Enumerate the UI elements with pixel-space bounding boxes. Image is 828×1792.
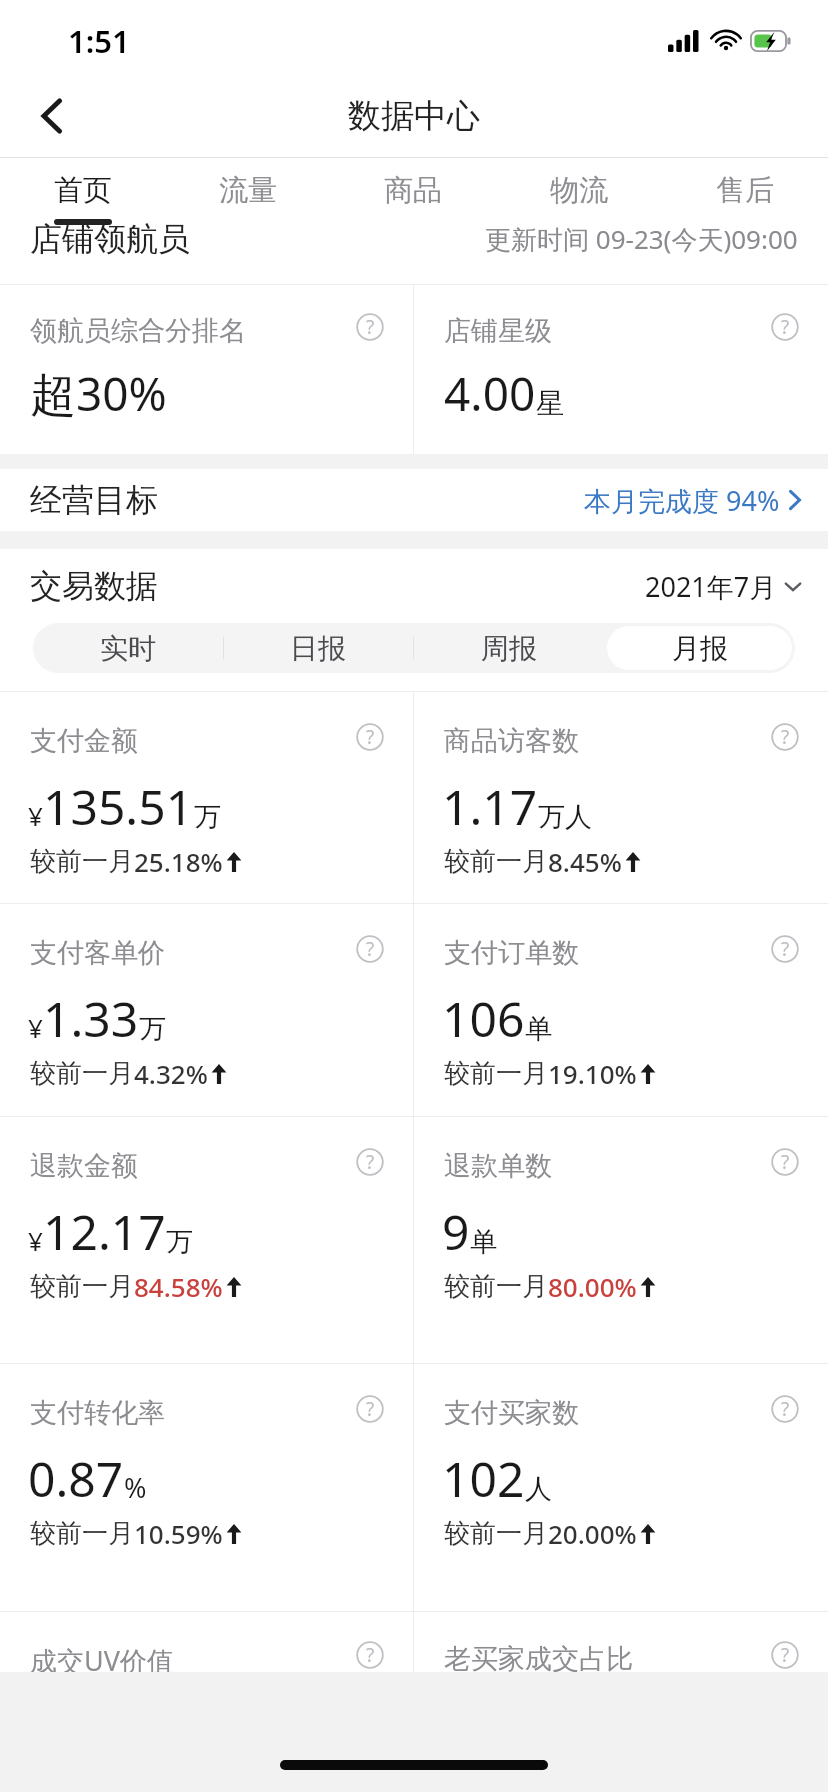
staticText: 135.51	[43, 774, 194, 839]
staticText: 流量	[219, 172, 277, 209]
staticText: 84.58%	[134, 1269, 223, 1304]
staticText: 10.59%	[134, 1516, 223, 1551]
staticText: 领航员综合分排名	[30, 314, 246, 348]
button[interactable]: 支付转化率	[0, 1364, 413, 1611]
staticText: 较前一月	[30, 1517, 134, 1550]
button[interactable]: Help	[355, 934, 385, 964]
staticText: 万	[139, 1012, 166, 1046]
staticText: 支付买家数	[444, 1396, 579, 1430]
staticText: ?	[781, 936, 790, 962]
staticText: ?	[781, 1642, 790, 1668]
staticText: 20.00%	[548, 1516, 637, 1551]
staticText: 0.87	[28, 1446, 124, 1511]
button[interactable]: 月报	[604, 623, 795, 673]
staticText: ?	[366, 1149, 375, 1175]
staticText: 106	[442, 986, 525, 1051]
staticText: 物流	[550, 172, 608, 209]
staticText: 退款金额	[30, 1149, 138, 1183]
button[interactable]: 日报	[223, 623, 413, 673]
button[interactable]: 实时	[33, 623, 223, 673]
button[interactable]: Help	[355, 1147, 385, 1177]
button[interactable]: 支付客单价	[0, 904, 413, 1116]
staticText: 较前一月	[444, 1517, 548, 1550]
staticText: 较前一月	[30, 1057, 134, 1090]
staticText: 支付客单价	[30, 936, 165, 970]
staticText: 商品	[384, 172, 442, 209]
staticText: 交易数据	[30, 566, 158, 606]
button[interactable]: 经营目标	[0, 469, 828, 531]
staticText: 8.45%	[548, 844, 622, 879]
button[interactable]: 退款单数	[414, 1117, 828, 1363]
button[interactable]: Back	[0, 75, 104, 157]
staticText: 1:51	[68, 20, 130, 62]
staticText: 4.00	[444, 362, 536, 425]
staticText: 支付转化率	[30, 1396, 165, 1430]
staticText: 日报	[290, 631, 346, 666]
button[interactable]: 商品	[330, 158, 496, 238]
button[interactable]: 支付金额	[0, 692, 413, 903]
staticText: ?	[366, 1396, 375, 1422]
staticText: 成交UV价值	[30, 1642, 174, 1672]
staticText: 店铺星级	[444, 314, 552, 348]
button[interactable]: 商品访客数	[414, 692, 828, 903]
button[interactable]: Help	[355, 1640, 385, 1670]
button[interactable]: 支付买家数	[414, 1364, 828, 1611]
staticText: %	[124, 1469, 147, 1506]
staticText: ?	[781, 724, 790, 750]
button[interactable]: 老买家成交占比	[414, 1612, 828, 1672]
staticText: ?	[781, 1396, 790, 1422]
button[interactable]: 店铺星级	[414, 284, 828, 454]
button[interactable]: Help	[770, 1147, 800, 1177]
button[interactable]: 流量	[165, 158, 330, 238]
staticText: 较前一月	[30, 1270, 134, 1303]
staticText: 4.32%	[134, 1056, 208, 1091]
staticText: 万人	[538, 800, 592, 834]
button[interactable]: 领航员综合分排名	[0, 284, 413, 454]
staticText: ?	[366, 724, 375, 750]
staticText: 12.17	[43, 1199, 166, 1264]
button[interactable]: Help	[770, 934, 800, 964]
staticText: 更新时间 09-23(今天)09:00	[485, 221, 798, 257]
staticText: 本月完成度 94%	[584, 482, 780, 519]
button[interactable]: Help	[770, 312, 800, 342]
staticText: 实时	[100, 631, 156, 666]
staticText: 万	[194, 800, 221, 834]
staticText: 月报	[672, 631, 728, 666]
staticText: 万	[166, 1225, 193, 1259]
button[interactable]: Help	[355, 312, 385, 342]
button[interactable]: 首页	[0, 158, 165, 238]
button[interactable]: 支付订单数	[414, 904, 828, 1116]
staticText: 老买家成交占比	[444, 1642, 633, 1672]
staticText: 支付订单数	[444, 936, 579, 970]
button[interactable]: 周报	[413, 623, 604, 673]
staticText: 数据中心	[348, 95, 480, 137]
button[interactable]: Help	[355, 1394, 385, 1424]
button[interactable]: 成交UV价值	[0, 1612, 413, 1672]
button[interactable]: 2021年7月	[645, 568, 828, 605]
staticText: 人	[525, 1472, 552, 1506]
staticText: 支付金额	[30, 724, 138, 758]
staticText: 较前一月	[444, 1270, 548, 1303]
staticText: 较前一月	[444, 845, 548, 878]
staticText: 店铺领航员	[30, 219, 190, 259]
staticText: 2021年7月	[645, 568, 777, 605]
staticText: 商品访客数	[444, 724, 579, 758]
staticText: 1.33	[43, 986, 139, 1051]
button[interactable]: 退款金额	[0, 1117, 413, 1363]
staticText: 较前一月	[444, 1057, 548, 1090]
staticText: ¥	[28, 798, 43, 833]
staticText: 80.00%	[548, 1269, 637, 1304]
button[interactable]: 售后	[662, 158, 828, 238]
button[interactable]: 物流	[496, 158, 662, 238]
staticText: 星	[536, 386, 564, 421]
button[interactable]: Help	[770, 722, 800, 752]
staticText: 退款单数	[444, 1149, 552, 1183]
staticText: ¥	[28, 1010, 43, 1045]
staticText: 102	[442, 1446, 525, 1511]
button[interactable]: Help	[770, 1640, 800, 1670]
staticText: ¥	[28, 1223, 43, 1258]
staticText: 9	[442, 1199, 470, 1264]
button[interactable]: Help	[355, 722, 385, 752]
button[interactable]: Help	[770, 1394, 800, 1424]
staticText: ?	[781, 314, 790, 340]
